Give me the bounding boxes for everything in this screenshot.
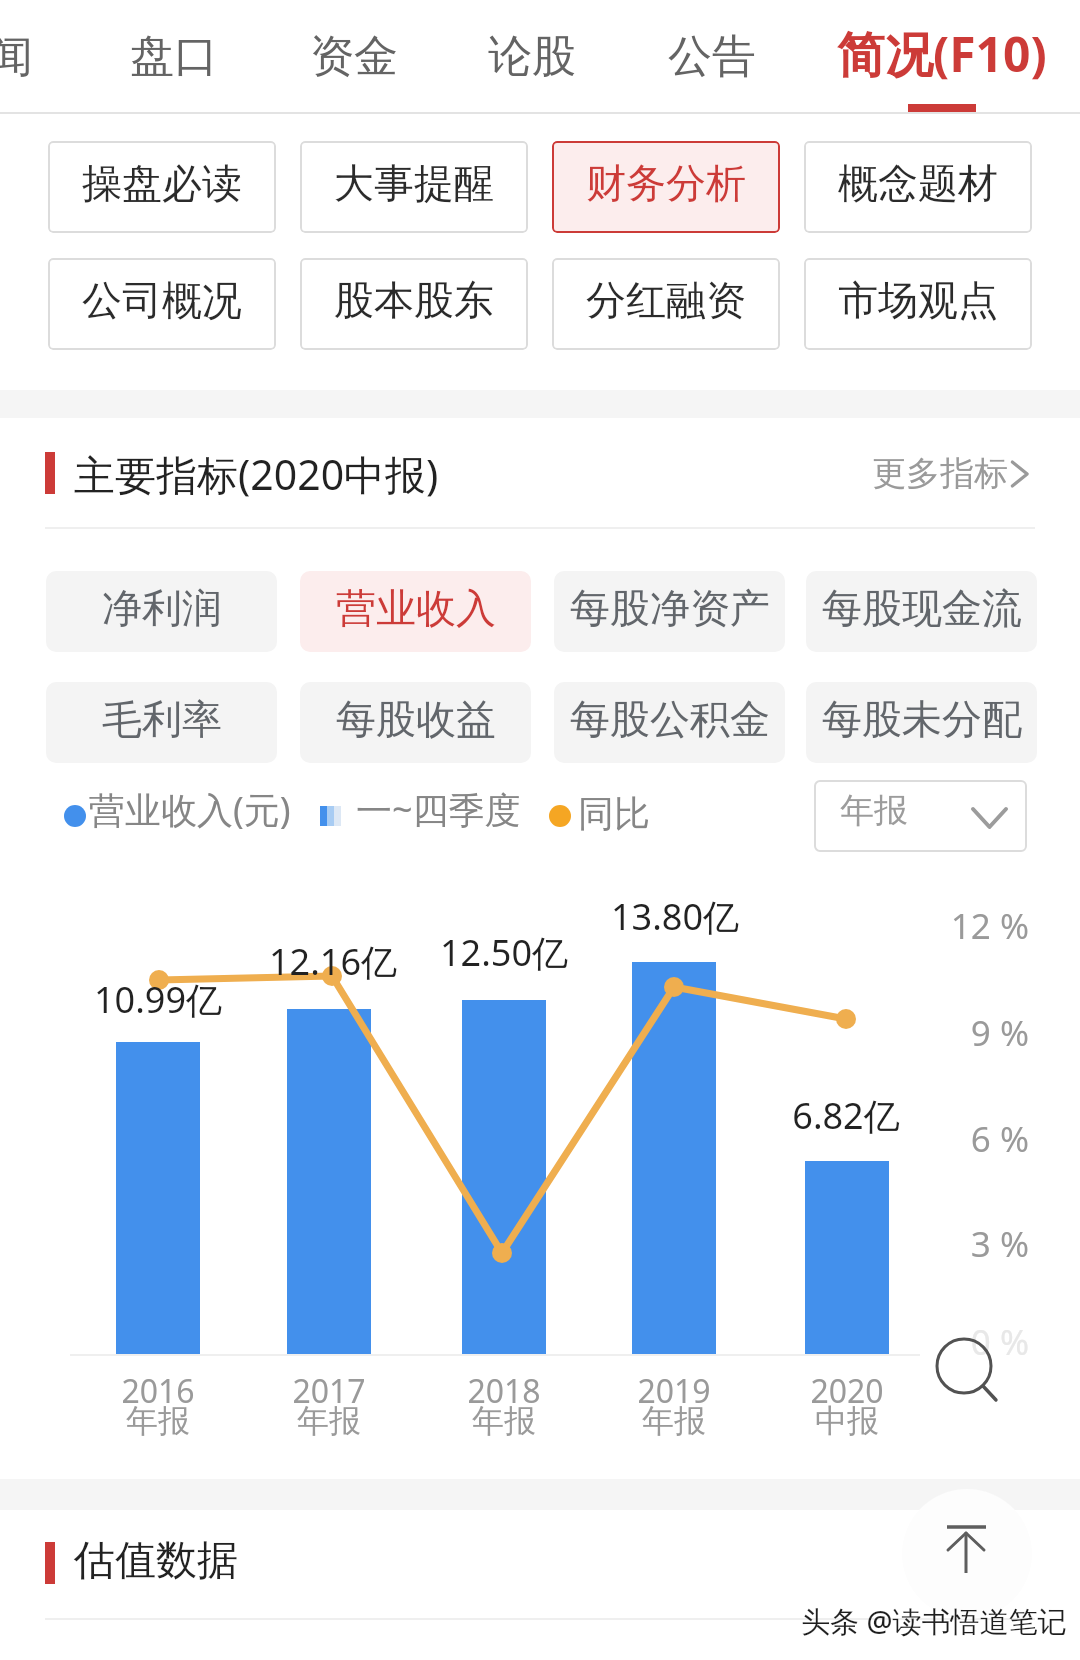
staticText: 13.80亿 — [555, 892, 795, 941]
button[interactable]: Zoom chart — [930, 1332, 1006, 1408]
staticText: 中报 — [747, 1401, 947, 1441]
staticText: 公告 — [668, 29, 756, 84]
staticText: 12.16亿 — [213, 937, 453, 986]
staticText: 盘口 — [130, 29, 218, 84]
button[interactable]: 盘口 — [108, 0, 240, 112]
button[interactable]: 财务分析 — [552, 141, 780, 233]
staticText: 资金 — [310, 29, 398, 84]
button[interactable]: Scroll to top — [902, 1489, 1032, 1619]
button[interactable]: 毛利率 — [46, 682, 277, 763]
button[interactable]: 大事提醒 — [300, 141, 528, 233]
button[interactable]: 公告 — [646, 0, 778, 112]
staticText: 同比 — [578, 791, 650, 836]
button[interactable]: 营业收入 — [300, 571, 531, 652]
staticText: 3 % — [930, 1220, 1029, 1268]
staticText: 毛利率 — [102, 694, 222, 744]
staticText: 财务分析 — [586, 158, 746, 208]
button[interactable]: 更多指标 — [872, 452, 1032, 495]
button[interactable]: 每股收益 — [300, 682, 531, 763]
staticText: 头条 @读书悟道笔记 — [801, 1601, 1067, 1641]
staticText: 2018 — [404, 1369, 604, 1413]
staticText: 10.99亿 — [38, 975, 278, 1024]
button[interactable]: 公司概况 — [48, 258, 276, 350]
staticText: 操盘必读 — [82, 158, 242, 208]
staticText: 每股收益 — [336, 694, 496, 744]
button[interactable]: 每股未分配 — [806, 682, 1037, 763]
button[interactable]: 分红融资 — [552, 258, 780, 350]
button[interactable]: 操盘必读 — [48, 141, 276, 233]
staticText: 每股现金流 — [822, 583, 1022, 633]
button[interactable]: 净利润 — [46, 571, 277, 652]
button[interactable]: 每股净资产 — [554, 571, 785, 652]
staticText: 公司概况 — [82, 275, 242, 325]
button[interactable]: 简况(F10) — [820, 0, 1060, 112]
staticText: 估值数据 — [74, 1535, 238, 1587]
button[interactable]: 每股公积金 — [554, 682, 785, 763]
staticText: 12 % — [930, 902, 1029, 950]
staticText: 2017 — [229, 1369, 429, 1413]
staticText: 营业收入(元) — [89, 785, 291, 834]
button[interactable]: 闻 — [0, 0, 66, 112]
staticText: 净利润 — [102, 583, 222, 633]
button[interactable]: 概念题材 — [804, 141, 1032, 233]
staticText: 概念题材 — [838, 158, 998, 208]
staticText: 大事提醒 — [334, 158, 494, 208]
staticText: 股本股东 — [334, 275, 494, 325]
staticText: 一~四季度 — [356, 785, 521, 834]
staticText: 分红融资 — [586, 275, 746, 325]
staticText: 营业收入 — [336, 583, 496, 633]
staticText: 12.50亿 — [384, 928, 624, 977]
staticText: 更多指标 — [872, 452, 1008, 495]
button[interactable]: 论股 — [466, 0, 598, 112]
button[interactable]: 市场观点 — [804, 258, 1032, 350]
staticText: 年报 — [574, 1401, 774, 1441]
staticText: 闻 — [0, 29, 33, 84]
staticText: 年报 — [404, 1401, 604, 1441]
staticText: 年报 — [58, 1401, 258, 1441]
staticText: 2016 — [58, 1369, 258, 1413]
staticText: 6.82亿 — [726, 1091, 966, 1140]
staticText: 2019 — [574, 1369, 774, 1413]
staticText: 年报 — [840, 789, 908, 832]
button[interactable]: 股本股东 — [300, 258, 528, 350]
button[interactable]: 年报 — [814, 780, 1027, 852]
button[interactable]: 资金 — [288, 0, 420, 112]
staticText: 9 % — [930, 1009, 1029, 1057]
staticText: 简况(F10) — [837, 21, 1047, 87]
button[interactable]: 每股现金流 — [806, 571, 1037, 652]
staticText: 0 % — [930, 1318, 1029, 1366]
staticText: 论股 — [488, 29, 576, 84]
staticText: 6 % — [930, 1115, 1029, 1163]
staticText: 每股公积金 — [570, 694, 770, 744]
staticText: 每股未分配 — [822, 694, 1022, 744]
staticText: 每股净资产 — [570, 583, 770, 633]
staticText: 市场观点 — [838, 275, 998, 325]
staticText: 2020 — [747, 1369, 947, 1413]
staticText: 年报 — [229, 1401, 429, 1441]
staticText: 主要指标(2020中报) — [74, 446, 439, 502]
